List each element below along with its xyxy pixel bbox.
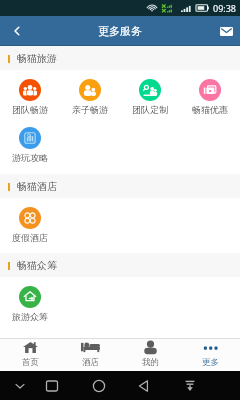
staticText: 我的 xyxy=(142,357,159,368)
button[interactable]: 更多 xyxy=(180,339,240,371)
button[interactable]: Recent apps xyxy=(38,371,66,400)
staticText: 畅猫酒店 xyxy=(17,180,57,193)
button[interactable]: 酒店 xyxy=(60,339,120,371)
staticText: 畅猫优惠 xyxy=(192,104,228,115)
button[interactable]: 畅猫优惠 xyxy=(180,70,240,118)
staticText: 畅猫旅游 xyxy=(17,52,57,65)
staticText: 更多服务 xyxy=(98,24,142,38)
button[interactable]: 首页 xyxy=(0,339,60,371)
button[interactable]: 团队畅游 xyxy=(0,70,60,118)
button[interactable]: 游玩攻略 xyxy=(0,118,60,166)
staticText: 游玩攻略 xyxy=(12,152,48,163)
staticText: 亲子畅游 xyxy=(72,104,108,115)
button[interactable]: 我的 xyxy=(120,339,180,371)
button[interactable]: Hide navigation xyxy=(6,371,34,400)
staticText: 旅游众筹 xyxy=(12,311,48,322)
button[interactable]: 团队定制 xyxy=(120,70,180,118)
staticText: 更多 xyxy=(202,357,219,368)
staticText: 度假酒店 xyxy=(12,232,48,243)
button[interactable]: 亲子畅游 xyxy=(60,70,120,118)
staticText: 团队畅游 xyxy=(12,104,48,115)
button[interactable]: 旅游众筹 xyxy=(0,277,60,325)
staticText: 首页 xyxy=(22,357,39,368)
button[interactable]: Hide keyboard xyxy=(176,371,204,400)
button[interactable]: 度假酒店 xyxy=(0,198,60,246)
staticText: 畅猫众筹 xyxy=(17,259,57,272)
button[interactable]: Back xyxy=(0,16,34,46)
button[interactable]: Back xyxy=(130,371,158,400)
button[interactable]: Messages xyxy=(212,16,240,46)
staticText: 酒店 xyxy=(82,357,99,368)
staticText: 09:38 xyxy=(213,2,237,14)
staticText: 团队定制 xyxy=(132,104,168,115)
button[interactable]: Home xyxy=(85,371,113,400)
